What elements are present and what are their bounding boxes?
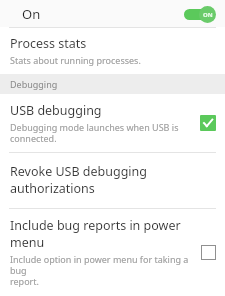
button[interactable]: Revoke USB debugging authorizations [0, 153, 225, 208]
staticText: Revoke USB debugging authorizations [10, 163, 216, 197]
staticText: ON [203, 11, 213, 19]
staticText: Include option in power menu for taking … [10, 253, 193, 287]
staticText: Debugging mode launches when USB is conn… [10, 121, 179, 144]
button[interactable]: Toggle developer options [183, 5, 216, 23]
staticText: Debugging [10, 78, 58, 90]
button[interactable]: Process stats [0, 28, 225, 74]
staticText: On [22, 5, 41, 23]
button[interactable]: Include bug reports in power menu [0, 209, 225, 296]
button[interactable]: USB debugging [0, 94, 225, 152]
staticText: Stats about running processes. [10, 54, 141, 66]
staticText: USB debugging [10, 102, 102, 119]
staticText: Include bug reports in power menu [10, 217, 193, 251]
staticText: Process stats [10, 35, 87, 52]
